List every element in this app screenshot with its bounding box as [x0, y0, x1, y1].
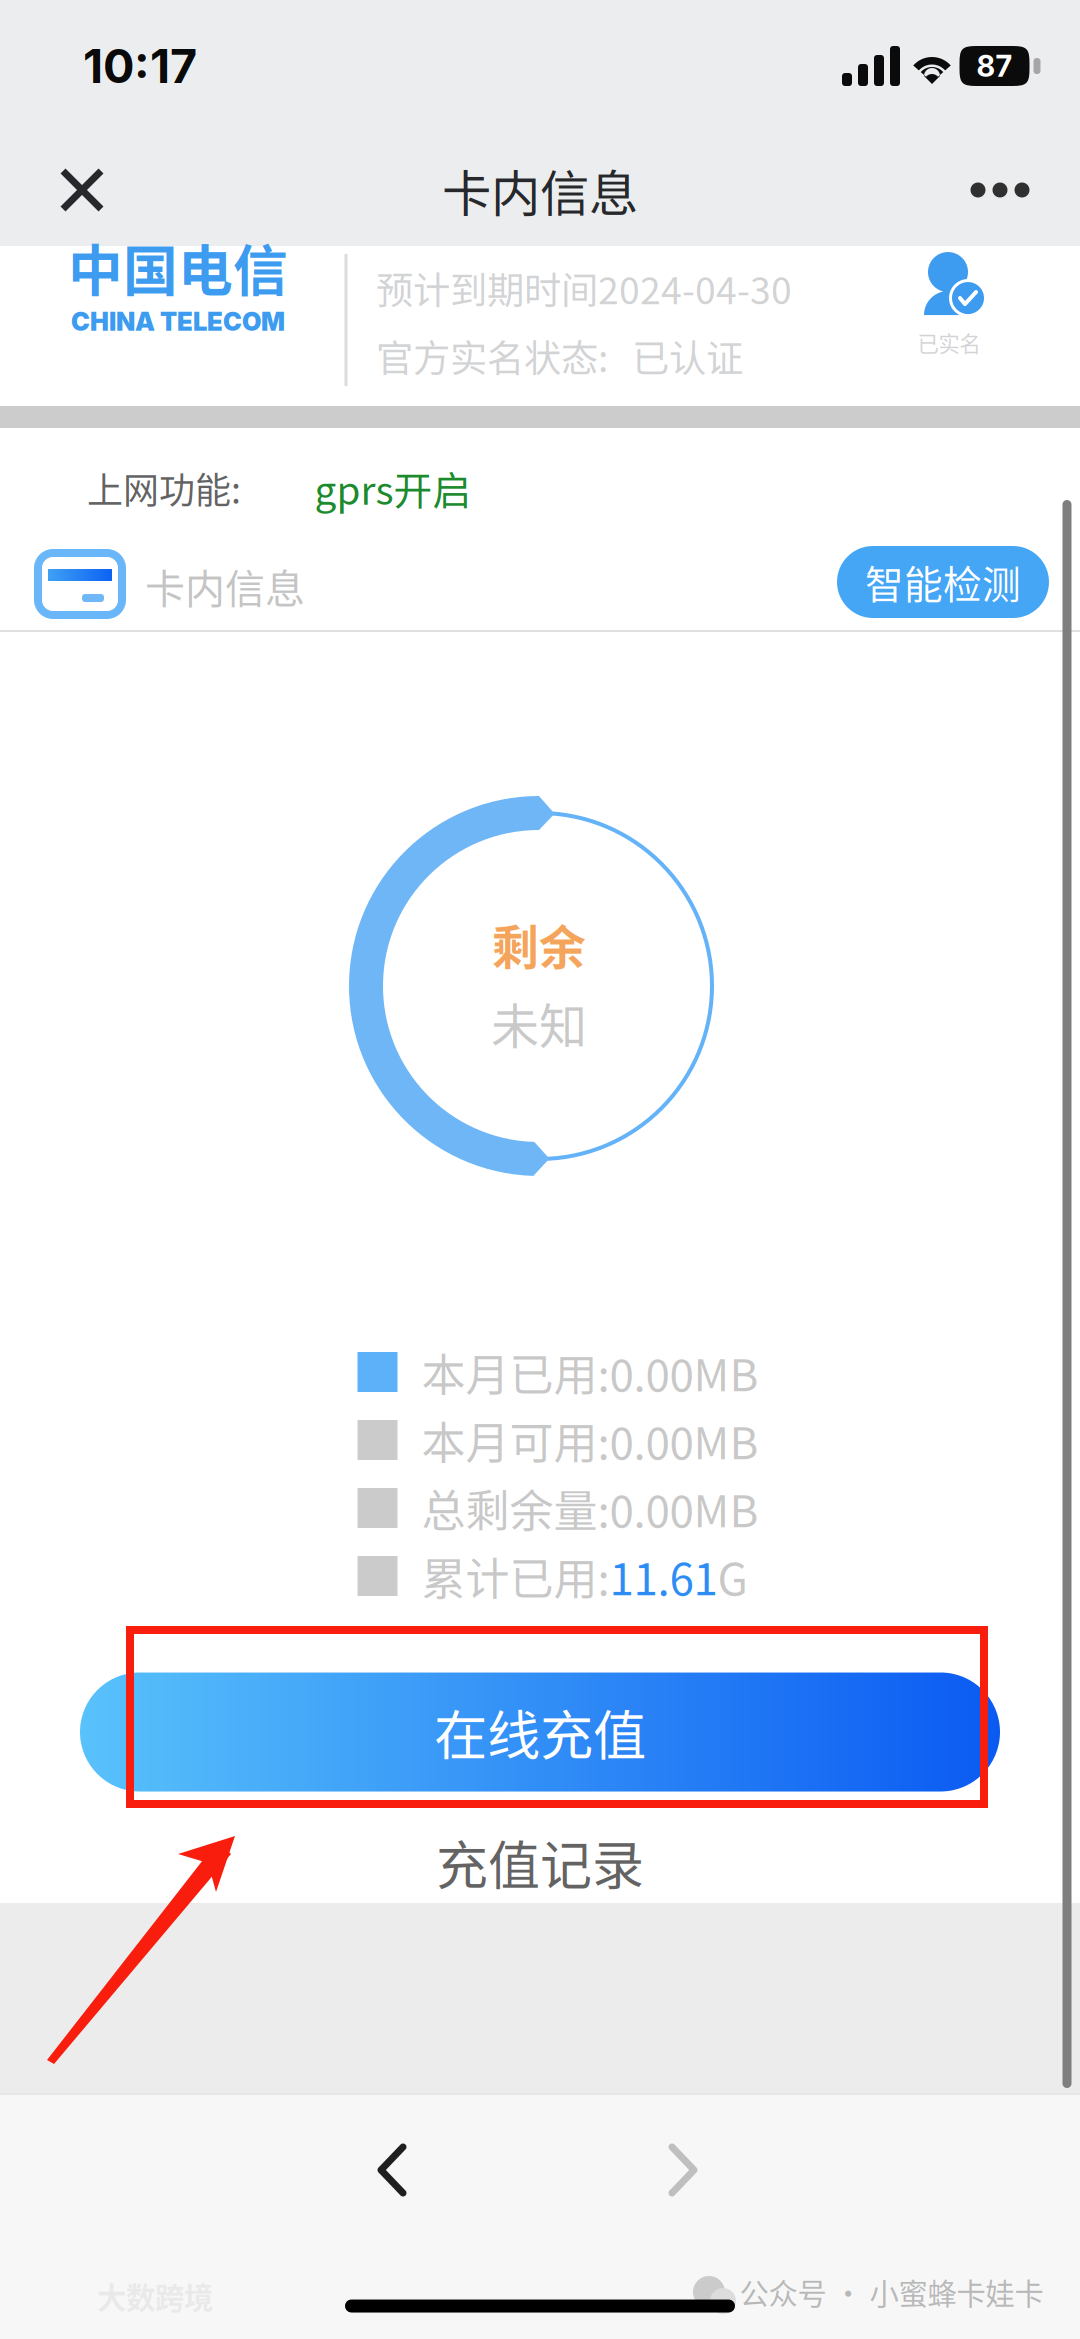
staticText: 本月可用:	[421, 1408, 609, 1472]
button[interactable]: 关闭	[24, 135, 140, 245]
staticText: 卡内信息	[442, 154, 638, 226]
staticText: 上网功能:	[87, 462, 241, 514]
button[interactable]: 智能检测	[837, 546, 1049, 618]
staticText: 累计已用:	[421, 1544, 609, 1608]
staticText: 剩余	[492, 910, 586, 978]
staticText: 10:17	[83, 38, 197, 94]
button[interactable]: 后退	[344, 2122, 440, 2218]
staticText: 已实名	[917, 327, 980, 358]
staticText: G	[717, 1544, 747, 1608]
staticText: 充值记录	[436, 1824, 644, 1900]
staticText: 大数跨境	[97, 2275, 213, 2317]
button[interactable]: 在线充值	[80, 1672, 1000, 1791]
staticText: 87	[976, 48, 1012, 84]
staticText: 智能检测	[865, 554, 1021, 610]
button[interactable]: 充值记录	[410, 1826, 670, 1898]
staticText: gprs开启	[314, 460, 471, 516]
staticText: 0.00MB	[609, 1408, 758, 1472]
staticText: CHINA TELECOM	[71, 306, 285, 337]
staticText: 预计到期时间2024-04-30	[376, 261, 792, 315]
staticText: 11.61	[609, 1544, 717, 1608]
staticText: 中国电信	[68, 227, 288, 306]
staticText: 官方实名状态: 已认证	[376, 329, 743, 383]
staticText: 未知	[491, 988, 587, 1057]
staticText: 卡内信息	[145, 557, 305, 615]
staticText: 0.00MB	[609, 1476, 758, 1540]
staticText: 本月已用:	[421, 1340, 609, 1404]
staticText: 公众号 · 小蜜蜂卡娃卡	[739, 2271, 1043, 2313]
staticText: 总剩余量:	[421, 1476, 609, 1540]
button[interactable]: 更多	[942, 135, 1058, 245]
button[interactable]: 前进	[635, 2122, 731, 2218]
staticText: 0.00MB	[609, 1340, 758, 1404]
staticText: 在线充值	[434, 1693, 646, 1771]
